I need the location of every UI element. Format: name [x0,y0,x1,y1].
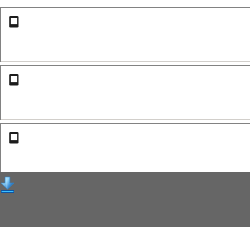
button[interactable]: Device [0,65,250,120]
button[interactable]: Device [0,123,250,178]
button[interactable]: Device [0,7,250,62]
button[interactable]: Download [1,177,14,193]
